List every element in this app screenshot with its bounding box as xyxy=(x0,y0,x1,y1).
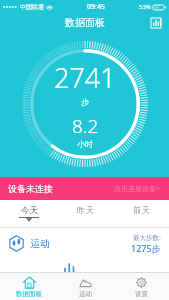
button[interactable]: 今天 xyxy=(0,200,57,227)
staticText: 运动 xyxy=(79,290,92,298)
staticText: 运动 xyxy=(30,237,50,250)
staticText: 昨天 xyxy=(77,205,94,216)
button[interactable]: 昨天 xyxy=(57,200,113,227)
staticText: 中国联通 xyxy=(20,3,44,11)
button[interactable]: 数据面板 xyxy=(0,273,57,300)
button[interactable]: 运动 xyxy=(57,273,113,300)
button[interactable]: Chart xyxy=(149,16,163,30)
staticText: 点击连接设备> xyxy=(114,184,161,194)
staticText: 小时 xyxy=(77,139,93,149)
staticText: 步 xyxy=(81,97,89,107)
staticText: 今天 xyxy=(21,205,38,216)
button[interactable]: 设备未连接 xyxy=(0,177,169,200)
staticText: 前天 xyxy=(133,205,150,216)
staticText: 最大步数: xyxy=(133,233,161,242)
staticText: 1275步 xyxy=(131,242,161,254)
staticText: 数据面板 xyxy=(16,290,42,298)
staticText: 09:45 xyxy=(87,2,105,12)
staticText: 数据面板 xyxy=(65,16,105,29)
staticText: 2741 xyxy=(54,59,116,96)
button[interactable]: 运动 xyxy=(0,228,169,258)
button[interactable]: 设置 xyxy=(113,273,169,300)
staticText: 53% xyxy=(139,3,151,11)
staticText: 8.2 xyxy=(72,113,99,139)
button[interactable]: 前天 xyxy=(113,200,169,227)
staticText: 设备未连接 xyxy=(8,183,53,194)
staticText: 设置 xyxy=(135,290,148,298)
